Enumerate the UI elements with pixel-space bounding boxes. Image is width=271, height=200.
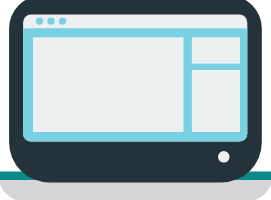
button[interactable]: Laptop with browser window illustration: [0, 0, 271, 200]
